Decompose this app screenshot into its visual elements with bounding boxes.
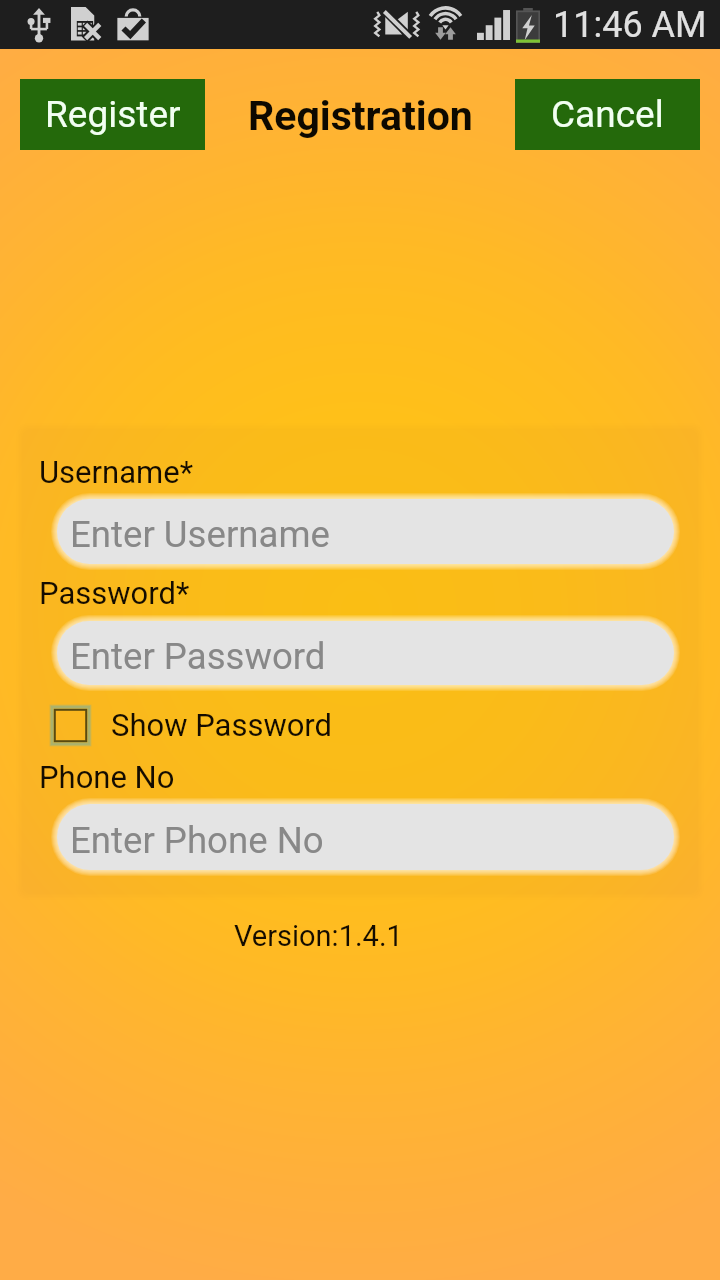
staticText: Enter Phone No xyxy=(70,819,324,862)
staticText: Enter Password xyxy=(70,635,326,678)
button[interactable]: Enter Phone No xyxy=(57,804,674,870)
staticText: Show Password xyxy=(111,707,333,743)
staticText: Phone No xyxy=(39,759,175,795)
button[interactable]: Enter Username xyxy=(57,499,674,564)
button[interactable]: Enter Password xyxy=(57,621,674,685)
staticText: Registration xyxy=(248,92,473,140)
button[interactable]: Show Password xyxy=(39,697,333,753)
staticText: Cancel xyxy=(551,93,664,136)
staticText: Version:1.4.1 xyxy=(234,919,403,953)
staticText: 11:46 AM xyxy=(553,4,707,46)
staticText: Password* xyxy=(39,575,190,611)
staticText: Username* xyxy=(39,454,194,490)
button[interactable]: Register xyxy=(20,79,205,150)
button[interactable]: Cancel xyxy=(515,79,700,150)
staticText: Register xyxy=(45,93,181,136)
staticText: Enter Username xyxy=(70,513,330,556)
